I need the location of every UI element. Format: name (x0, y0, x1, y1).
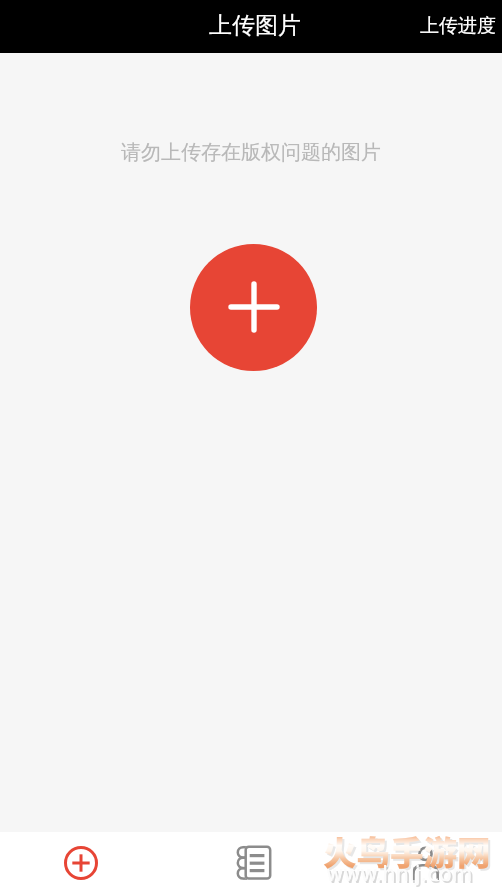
button[interactable]: My uploads (167, 832, 334, 890)
button[interactable]: Add upload (0, 832, 167, 890)
staticText: 火鸟手游网 (325, 828, 493, 877)
staticText: 请勿上传存在版权问题的图片 (121, 140, 381, 165)
staticText: www.hnij.com (328, 864, 475, 888)
staticText: 上传进度 (420, 14, 496, 38)
button[interactable]: Profile (334, 832, 502, 890)
button[interactable]: Add image (190, 244, 317, 371)
staticText: 火鸟手游网 (323, 826, 491, 875)
button[interactable]: 上传进度 (412, 4, 502, 48)
staticText: www.hnij.com (326, 862, 473, 886)
staticText: 上传图片 (209, 11, 301, 40)
